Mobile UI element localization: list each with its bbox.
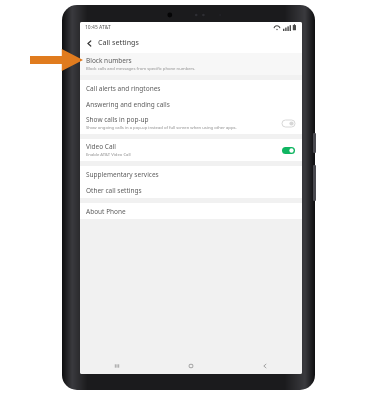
button[interactable]: Back — [80, 34, 98, 52]
button[interactable]: Toggle off — [280, 117, 296, 129]
staticText: Enable AT&T Video Call — [86, 152, 131, 158]
button[interactable]: About Phone — [80, 203, 302, 219]
button[interactable]: Call alerts and ringtones — [80, 80, 302, 96]
button[interactable]: Other call settings — [80, 182, 302, 198]
staticText: Call alerts and ringtones — [86, 84, 161, 93]
button[interactable]: Block numbers — [80, 53, 302, 75]
staticText: 10:45 AT&T — [85, 24, 111, 31]
button[interactable]: Video Call — [80, 139, 302, 161]
button[interactable]: Back — [228, 358, 302, 374]
staticText: Other call settings — [86, 186, 142, 195]
button[interactable]: Home — [154, 358, 228, 374]
staticText: Block calls and messages from specific p… — [86, 66, 196, 72]
staticText: About Phone — [86, 207, 126, 216]
staticText: Show ongoing calls in a pop-up instead o… — [86, 125, 237, 131]
button[interactable]: Answering and ending calls — [80, 96, 302, 112]
staticText: Block numbers — [86, 56, 132, 65]
staticText: Answering and ending calls — [86, 100, 170, 109]
button[interactable]: Show calls in pop-up — [80, 112, 302, 134]
button[interactable]: Recent apps — [80, 358, 154, 374]
button[interactable]: Toggle on — [280, 144, 296, 156]
staticText: Video Call — [86, 142, 116, 151]
staticText: Show calls in pop-up — [86, 115, 149, 124]
button[interactable]: Supplementary services — [80, 166, 302, 182]
staticText: Supplementary services — [86, 170, 159, 179]
staticText: Call settings — [98, 38, 139, 48]
